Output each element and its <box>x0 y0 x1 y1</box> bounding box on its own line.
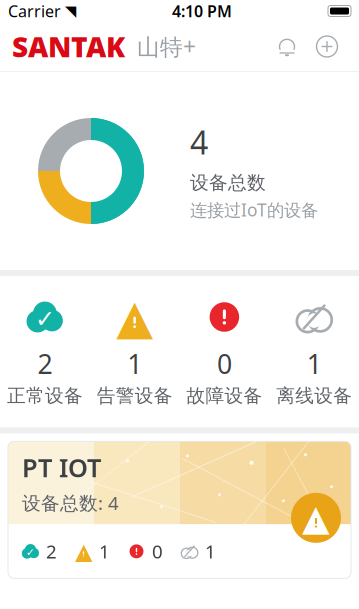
staticText: 2 <box>46 539 57 564</box>
staticText: 0 <box>217 346 232 381</box>
staticText: 连接过IoT的设备 <box>190 198 318 221</box>
staticText: 设备总数: 4 <box>22 490 119 515</box>
staticText: 1 <box>99 539 110 564</box>
staticText: 山特+ <box>137 31 196 61</box>
staticText: 1 <box>205 539 216 564</box>
staticText: 2 <box>37 346 52 381</box>
button[interactable]: ✓ <box>0 298 90 407</box>
staticText: ▲ <box>116 290 153 344</box>
staticText: ◥ <box>65 3 76 19</box>
button[interactable]: Notifications <box>267 26 307 66</box>
staticText: 1 <box>307 346 322 381</box>
button[interactable]: 1 <box>269 298 359 407</box>
staticText: SANTAK <box>12 28 125 65</box>
staticText: 正常设备 <box>7 384 83 407</box>
staticText: ✓ <box>35 305 55 332</box>
button[interactable]: 0 <box>179 298 269 407</box>
button[interactable]: ▲ <box>90 298 180 407</box>
staticText: 告警设备 <box>97 384 173 407</box>
staticText: 故障设备 <box>186 384 262 407</box>
button[interactable]: PT IOT <box>8 441 351 578</box>
staticText: 离线设备 <box>276 384 352 407</box>
staticText: ▲ <box>302 497 330 538</box>
staticText: Carrier <box>8 0 61 22</box>
staticText: PT IOT <box>22 451 101 484</box>
staticText: 0 <box>152 539 163 564</box>
staticText: 设备总数 <box>190 171 266 194</box>
staticText: ✓ <box>26 546 35 558</box>
staticText: ▲ <box>75 538 92 564</box>
button[interactable]: Add <box>307 26 347 66</box>
staticText: 4 <box>190 121 208 163</box>
staticText: 4:10 PM <box>172 0 232 22</box>
staticText: 1 <box>127 346 142 381</box>
